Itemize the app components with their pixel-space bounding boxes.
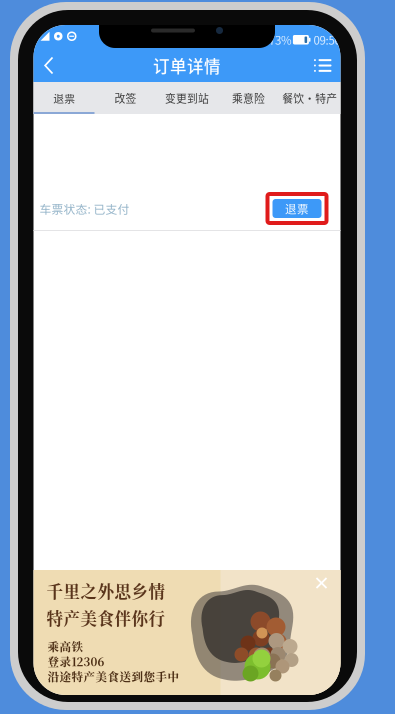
- button[interactable]: Close advertisement: [309, 571, 333, 595]
- staticText: 乘高铁: [47, 638, 83, 654]
- button[interactable]: 变更到站: [156, 82, 218, 114]
- staticText: 乘意险: [232, 90, 265, 106]
- staticText: 登录12306: [47, 653, 104, 669]
- button[interactable]: 乘意险: [218, 82, 279, 114]
- staticText: 变更到站: [165, 90, 209, 106]
- staticText: 09:50: [313, 31, 340, 48]
- staticText: 餐饮·特产: [282, 90, 337, 106]
- button[interactable]: Back: [33, 49, 64, 82]
- button[interactable]: 改签: [95, 82, 156, 114]
- button[interactable]: 退票: [33, 82, 95, 114]
- staticText: 订单详情: [153, 54, 221, 77]
- staticText: 退票: [53, 90, 75, 106]
- staticText: 特产美食伴你行: [46, 606, 165, 630]
- staticText: 沿途特产美食送到您手中: [47, 668, 179, 684]
- button[interactable]: 餐饮·特产: [279, 82, 340, 114]
- staticText: 退票: [285, 200, 309, 217]
- staticText: 千里之外思乡情: [46, 579, 165, 603]
- staticText: 车票状态: 已支付: [39, 200, 129, 217]
- button[interactable]: Menu: [305, 49, 340, 82]
- staticText: 73%: [269, 31, 292, 48]
- button[interactable]: 退票: [272, 199, 321, 218]
- staticText: 改签: [115, 90, 137, 106]
